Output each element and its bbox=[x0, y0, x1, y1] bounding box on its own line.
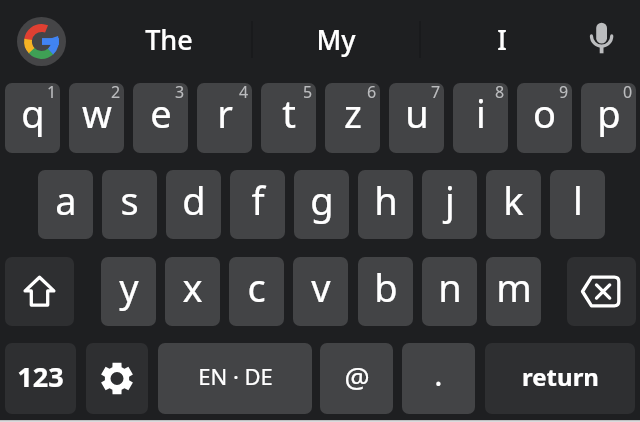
staticText: y bbox=[119, 261, 139, 313]
staticText: g bbox=[310, 174, 334, 226]
button[interactable]: Shift bbox=[5, 257, 74, 326]
button[interactable]: Switch language bbox=[158, 343, 312, 414]
staticText: return bbox=[522, 360, 599, 393]
button[interactable]: 123 bbox=[5, 343, 76, 414]
button[interactable]: Google bbox=[17, 17, 66, 66]
button[interactable]: o bbox=[517, 83, 572, 153]
staticText: 123 bbox=[17, 358, 64, 395]
button[interactable]: I bbox=[442, 8, 562, 70]
button[interactable]: j bbox=[422, 170, 477, 239]
staticText: p bbox=[597, 87, 621, 139]
staticText: s bbox=[120, 174, 139, 226]
staticText: k bbox=[503, 174, 524, 226]
staticText: e bbox=[150, 87, 172, 139]
button[interactable]: @ bbox=[320, 343, 393, 414]
staticText: EN · DE bbox=[198, 361, 273, 391]
staticText: q bbox=[21, 87, 45, 139]
button[interactable]: z bbox=[325, 83, 380, 153]
staticText: x bbox=[182, 261, 203, 313]
button[interactable]: k bbox=[486, 170, 541, 239]
button[interactable]: y bbox=[101, 257, 156, 326]
button[interactable]: The bbox=[109, 8, 229, 70]
staticText: 7 bbox=[431, 83, 441, 103]
staticText: t bbox=[282, 87, 296, 139]
button[interactable]: . bbox=[402, 343, 475, 414]
button[interactable]: r bbox=[197, 83, 252, 153]
staticText: The bbox=[145, 21, 193, 58]
button[interactable]: w bbox=[69, 83, 124, 153]
button[interactable]: n bbox=[422, 257, 477, 326]
staticText: b bbox=[374, 261, 398, 313]
staticText: w bbox=[82, 87, 112, 139]
staticText: I bbox=[497, 21, 507, 58]
button[interactable]: Settings bbox=[86, 343, 148, 414]
staticText: 6 bbox=[367, 83, 377, 103]
staticText: 5 bbox=[303, 83, 313, 103]
staticText: z bbox=[344, 87, 362, 139]
button[interactable]: p bbox=[581, 83, 636, 153]
staticText: h bbox=[374, 174, 398, 226]
button[interactable]: s bbox=[102, 170, 157, 239]
staticText: r bbox=[217, 87, 233, 139]
button[interactable]: b bbox=[358, 257, 413, 326]
button[interactable]: u bbox=[389, 83, 444, 153]
button[interactable]: q bbox=[5, 83, 60, 153]
staticText: i bbox=[476, 87, 486, 139]
staticText: 8 bbox=[495, 83, 505, 103]
staticText: . bbox=[434, 353, 443, 395]
button[interactable]: a bbox=[38, 170, 93, 239]
button[interactable]: g bbox=[294, 170, 349, 239]
button[interactable]: d bbox=[166, 170, 221, 239]
staticText: j bbox=[445, 174, 455, 226]
button[interactable]: h bbox=[358, 170, 413, 239]
staticText: a bbox=[55, 174, 77, 226]
staticText: o bbox=[533, 87, 556, 139]
staticText: c bbox=[247, 261, 266, 313]
staticText: 9 bbox=[559, 83, 569, 103]
button[interactable]: e bbox=[133, 83, 188, 153]
staticText: l bbox=[573, 174, 583, 226]
staticText: 4 bbox=[239, 83, 249, 103]
staticText: f bbox=[251, 174, 265, 226]
button[interactable]: f bbox=[230, 170, 285, 239]
button[interactable]: Voice input bbox=[578, 16, 625, 58]
staticText: n bbox=[438, 261, 462, 313]
button[interactable]: Backspace bbox=[567, 257, 636, 326]
button[interactable]: i bbox=[453, 83, 508, 153]
staticText: @ bbox=[344, 358, 370, 396]
button[interactable]: l bbox=[550, 170, 605, 239]
staticText: My bbox=[316, 21, 356, 58]
button[interactable]: My bbox=[276, 8, 396, 70]
button[interactable]: return bbox=[485, 343, 635, 414]
staticText: u bbox=[405, 87, 429, 139]
staticText: m bbox=[496, 261, 532, 313]
staticText: 3 bbox=[175, 83, 185, 103]
button[interactable]: m bbox=[486, 257, 541, 326]
button[interactable]: c bbox=[229, 257, 284, 326]
staticText: d bbox=[182, 174, 206, 226]
staticText: 2 bbox=[111, 83, 121, 103]
staticText: 0 bbox=[623, 83, 633, 103]
button[interactable]: t bbox=[261, 83, 316, 153]
staticText: 1 bbox=[47, 83, 57, 103]
button[interactable]: x bbox=[165, 257, 220, 326]
staticText: v bbox=[311, 261, 331, 313]
button[interactable]: v bbox=[293, 257, 348, 326]
